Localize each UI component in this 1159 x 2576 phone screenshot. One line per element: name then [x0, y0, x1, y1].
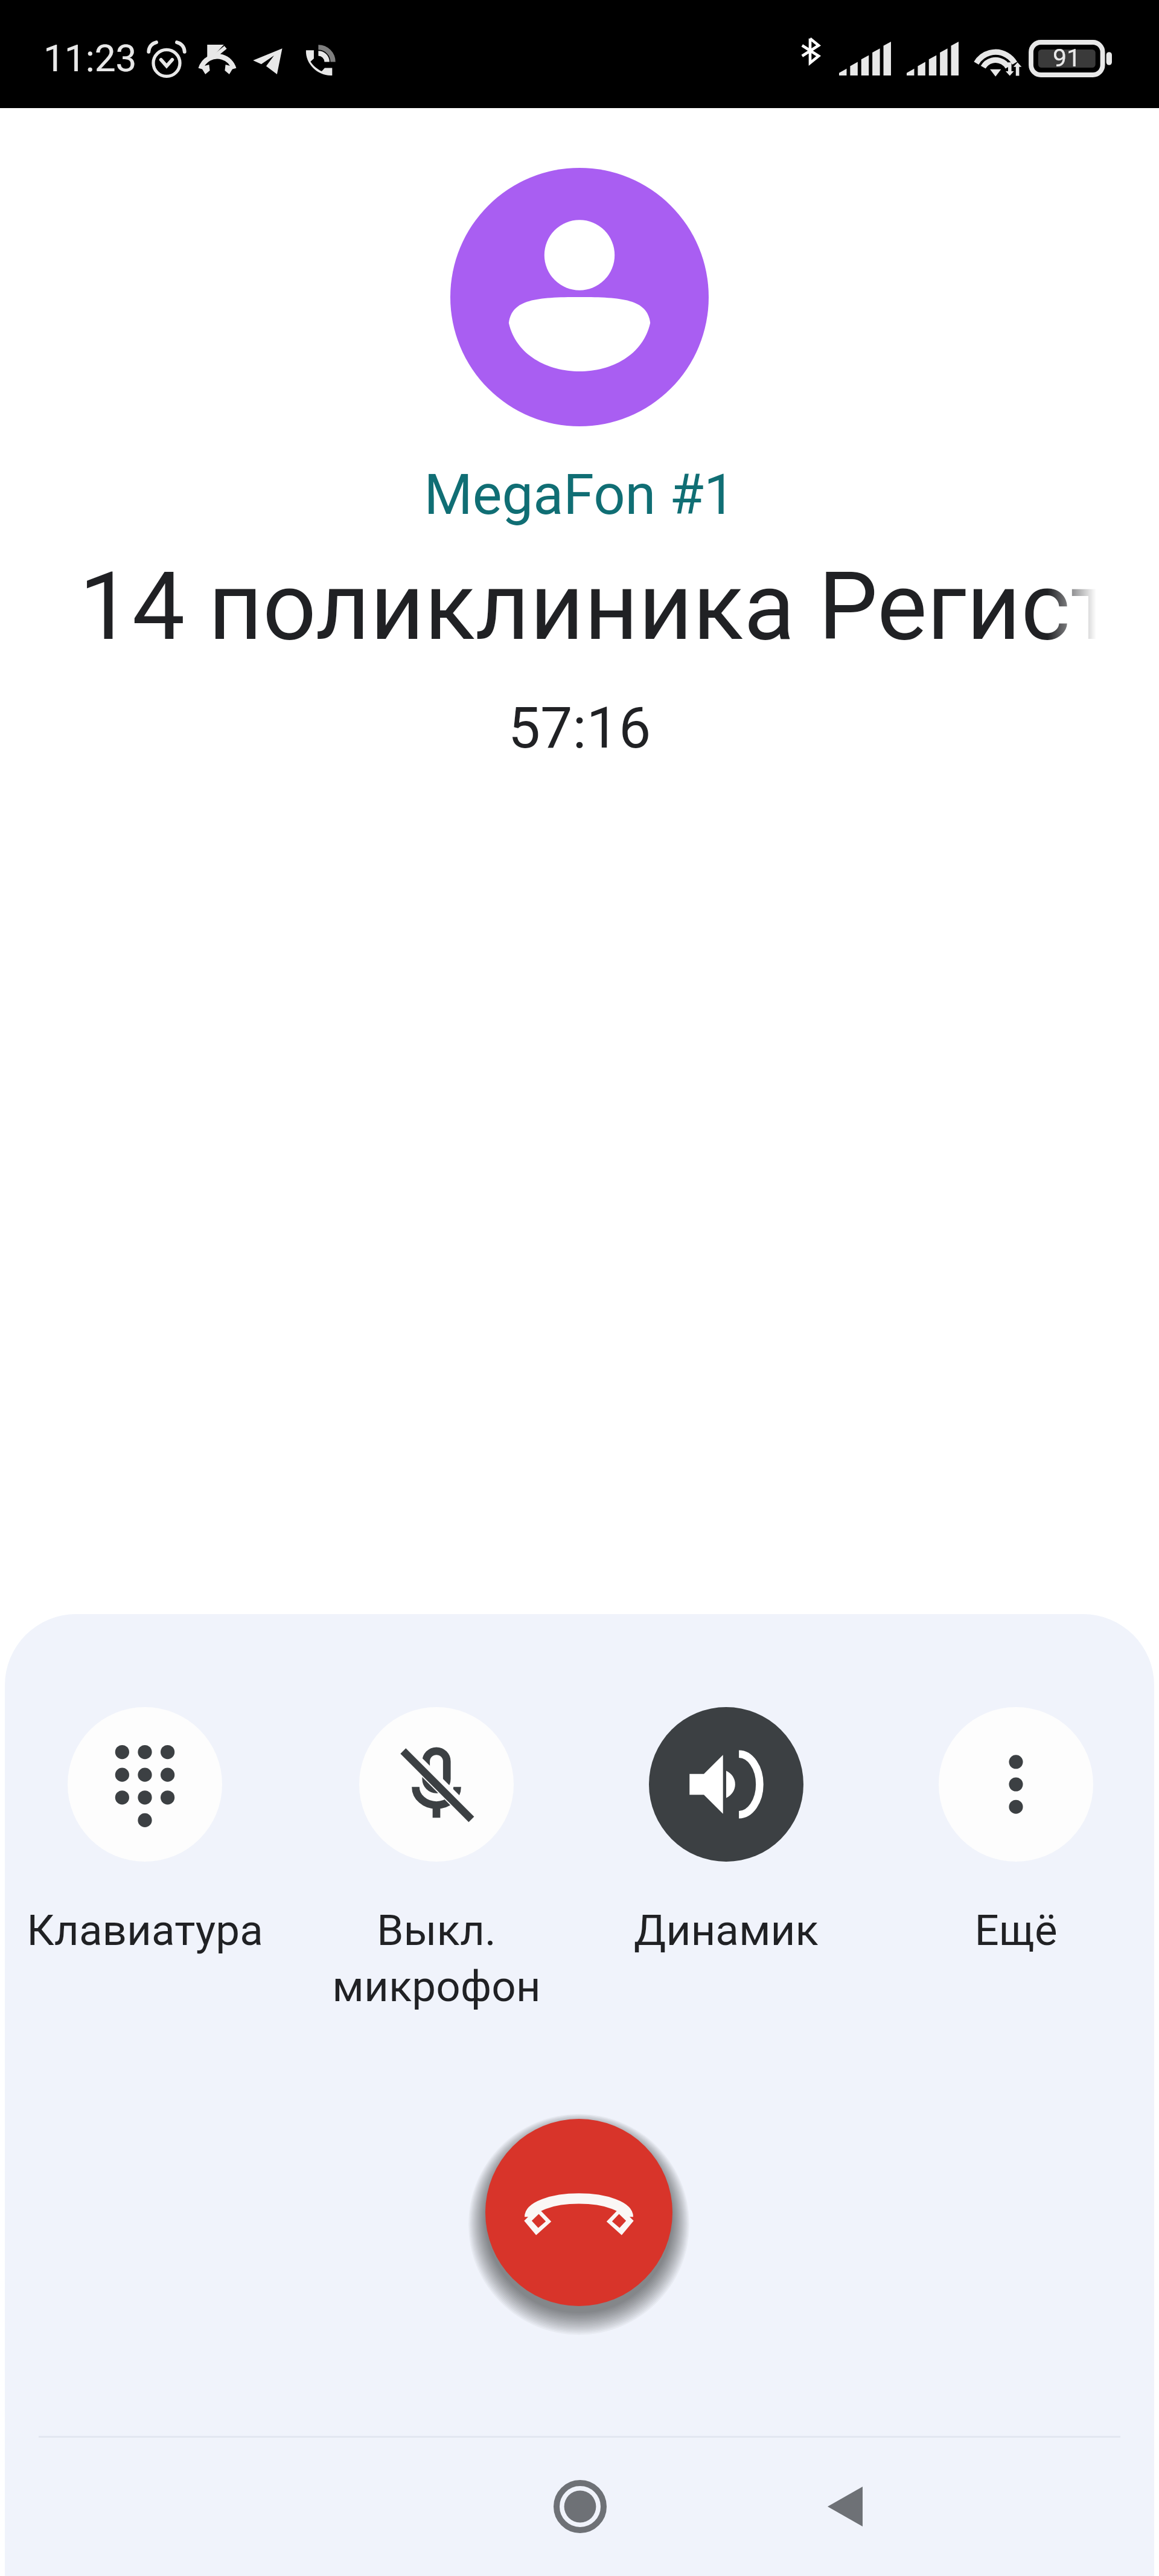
button[interactable]: Выключить микрофон — [295, 1707, 578, 2012]
button[interactable]: Завершить вызов — [485, 2119, 672, 2306]
button[interactable]: Back — [800, 2461, 890, 2552]
button[interactable]: Клавиатура — [3, 1707, 287, 1955]
staticText: 91 — [1053, 43, 1081, 72]
staticText: 11:23 — [43, 36, 137, 80]
button[interactable]: Динамик — [584, 1707, 868, 1955]
staticText: Выкл. микрофон — [295, 1905, 578, 2012]
staticText: Динамик — [584, 1905, 868, 1955]
other: Динамик — [686, 1745, 766, 1824]
staticText: Клавиатура — [3, 1905, 287, 1955]
button[interactable]: Home — [535, 2461, 625, 2552]
button[interactable]: Ещё — [874, 1707, 1158, 1955]
staticText: MegaFon #1 — [0, 463, 1159, 528]
other: Клавиатура — [105, 1745, 185, 1824]
staticText: Ещё — [874, 1905, 1158, 1955]
other: Выключить микрофон — [395, 1743, 478, 1826]
staticText: 14 поликлиника Регистратура — [79, 551, 1096, 662]
staticText: 57:16 — [0, 694, 1159, 761]
other: Ещё — [979, 1747, 1053, 1822]
